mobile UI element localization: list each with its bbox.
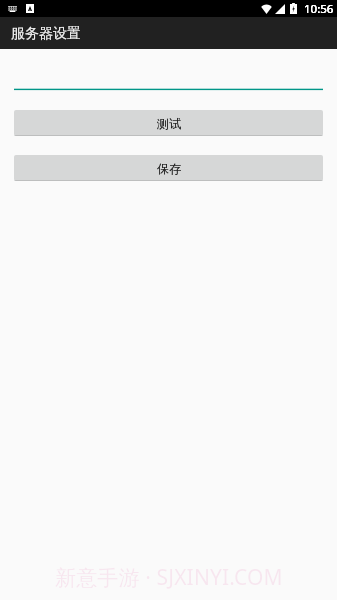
other: Battery charging [290,3,297,14]
staticText: 10:56 [304,1,334,17]
staticText: 服务器设置 [11,25,81,43]
staticText: 保存 [157,161,181,176]
button[interactable]: 保存 [14,155,323,181]
button[interactable] [0,49,337,91]
staticText: 测试 [157,116,181,131]
staticText: 新意手游 · SJXINYI.COM [55,563,283,592]
staticText: 保存 [157,161,181,176]
other: App notification [26,4,34,13]
other: Mobile signal [275,4,285,14]
other: Keyboard active [8,6,17,12]
other: Wi-Fi [261,4,272,14]
staticText: 10:56 [304,1,334,17]
staticText: 测试 [157,116,181,131]
button[interactable]: 测试 [14,110,323,136]
